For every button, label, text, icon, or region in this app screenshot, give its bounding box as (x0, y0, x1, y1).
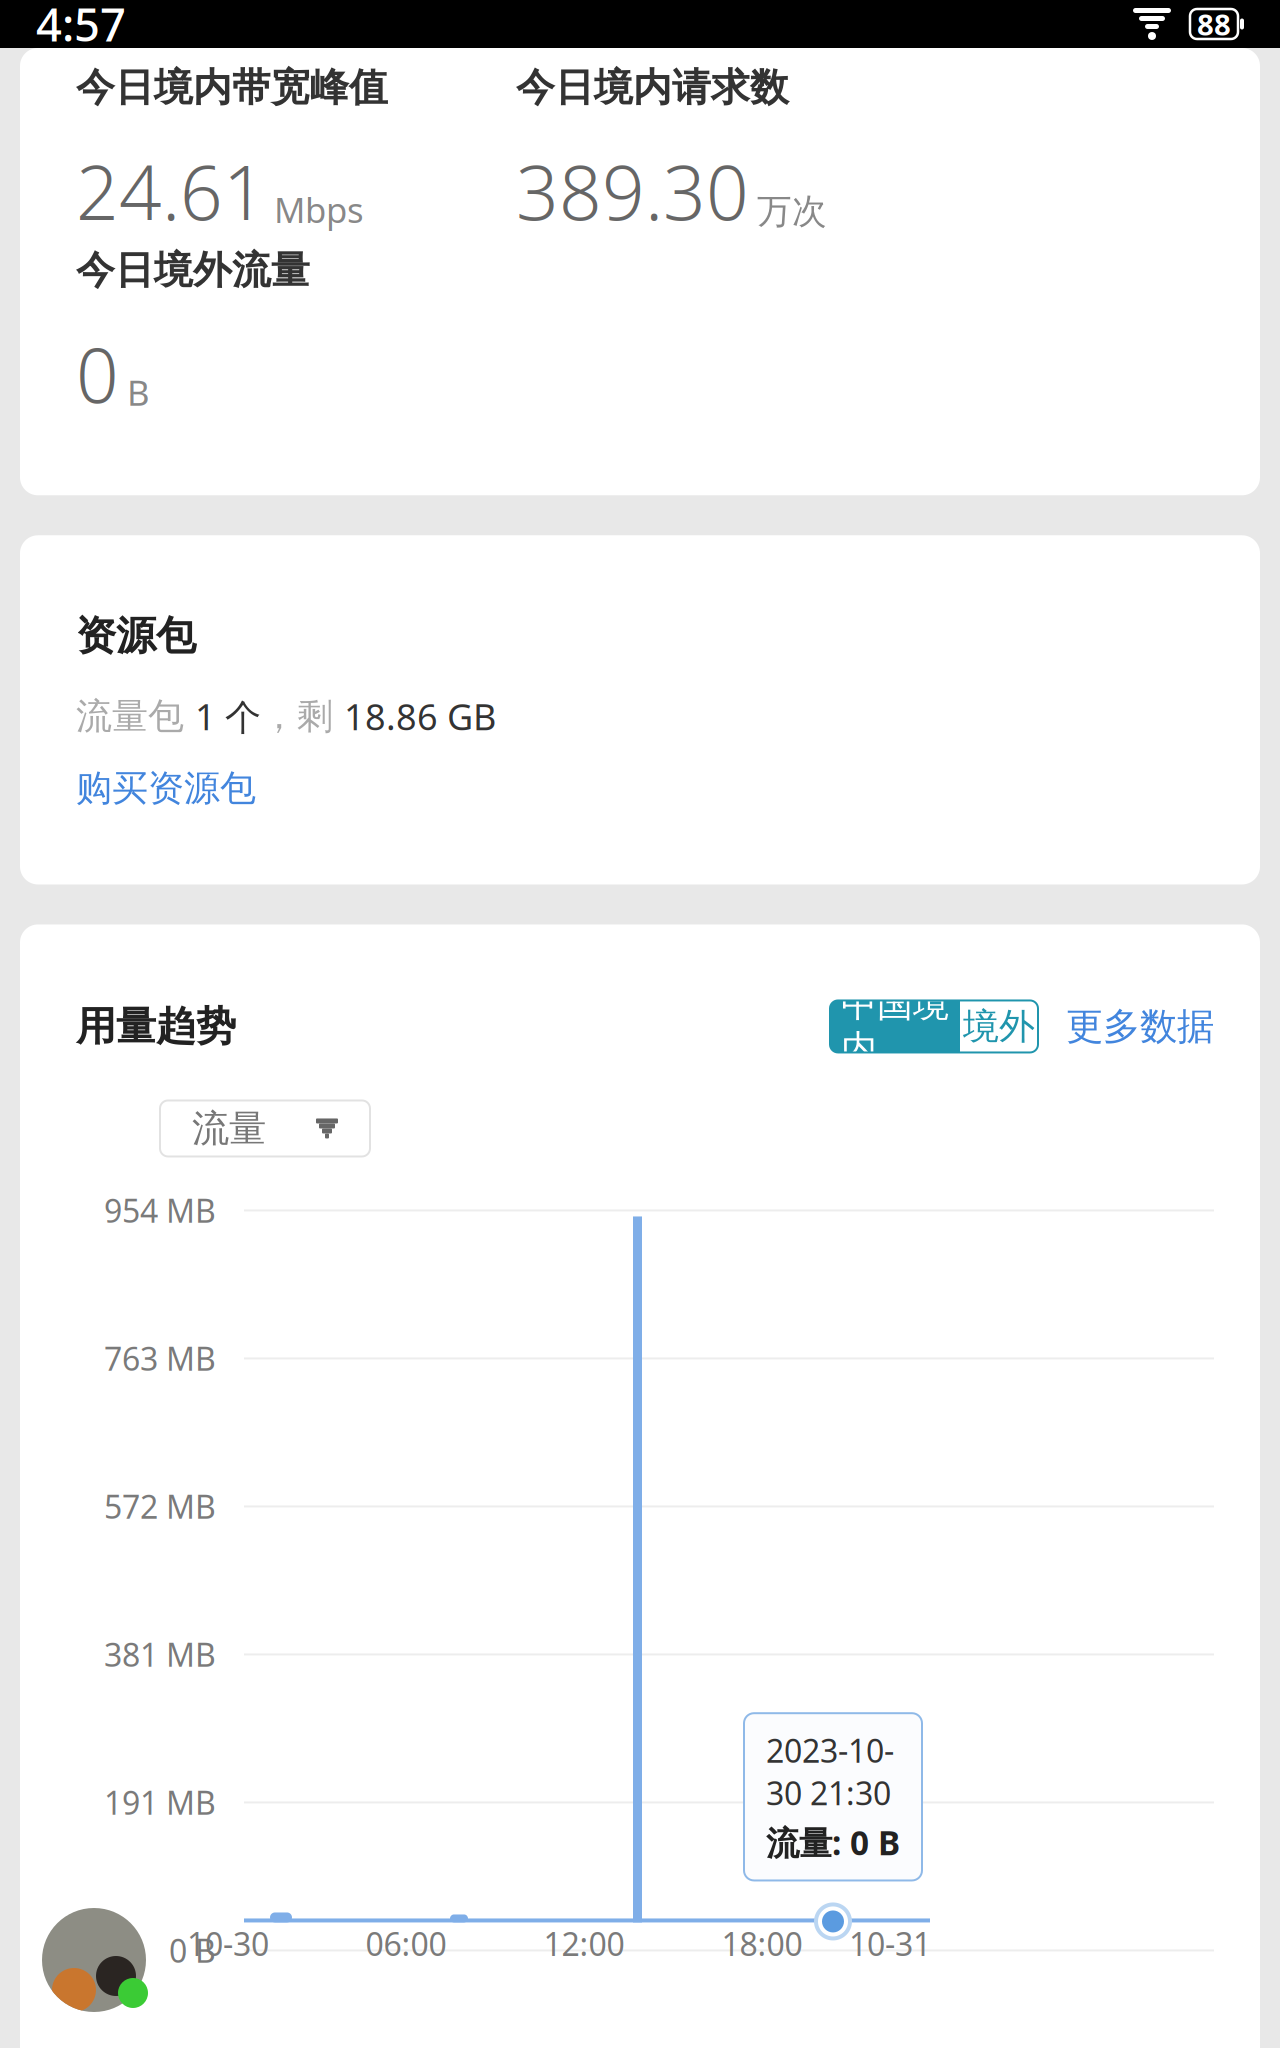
staticText: 购买资源包 (76, 766, 256, 810)
staticText: Mbps (274, 187, 364, 233)
staticText: 18.86 GB (344, 692, 496, 740)
button[interactable]: Account (32, 1898, 156, 2022)
button[interactable]: 流量 (160, 1100, 370, 1156)
staticText: 4:57 (36, 0, 126, 54)
staticText: 763 MB (104, 1337, 216, 1380)
button[interactable]: 购买资源包 (76, 762, 256, 814)
staticText: ， (261, 694, 297, 738)
staticText: 1 个 (195, 692, 261, 740)
staticText: 572 MB (104, 1485, 216, 1528)
staticText: 流量 (192, 1105, 266, 1151)
staticText: 万次 (757, 190, 827, 233)
staticText: 389.30 (516, 141, 749, 241)
staticText: 24.61 (76, 141, 266, 241)
staticText: 10-31 (849, 1922, 931, 1965)
staticText: 381 MB (104, 1633, 216, 1676)
staticText: 10-30 (187, 1922, 269, 1965)
staticText: 更多数据 (1066, 1003, 1214, 1049)
button[interactable]: 中国境内 (830, 1000, 960, 1052)
staticText: 18:00 (721, 1922, 802, 1965)
staticText: 2023-10-30 21:30 (766, 1729, 894, 1814)
staticText: 88 (1197, 4, 1231, 43)
staticText: 191 MB (104, 1781, 216, 1824)
staticText: 剩 (297, 694, 344, 738)
staticText: 流量包 (76, 694, 195, 738)
staticText: 用量趋势 (76, 1002, 236, 1051)
staticText: 今日境内带宽峰值 (76, 64, 388, 111)
staticText: 0 (76, 324, 119, 423)
staticText: 今日境外流量 (76, 247, 310, 294)
staticText: 境外 (963, 1004, 1035, 1048)
staticText: 12:00 (543, 1922, 624, 1965)
button[interactable]: 境外 (960, 1000, 1038, 1052)
staticText: 954 MB (104, 1189, 216, 1232)
staticText: 流量: 0 B (766, 1820, 900, 1864)
staticText: 资源包 (76, 611, 196, 660)
staticText: 06:00 (365, 1922, 446, 1965)
staticText: 今日境内请求数 (516, 64, 789, 111)
button[interactable]: 更多数据 (1066, 1003, 1214, 1049)
staticText: 0 B (169, 1929, 216, 1972)
staticText: B (127, 369, 150, 415)
staticText: 中国境内 (841, 982, 949, 1071)
